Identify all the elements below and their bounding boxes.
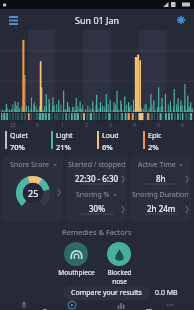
button[interactable]: Quiet [5, 131, 51, 152]
staticText: 2 [85, 122, 88, 129]
staticText: Snoring % [76, 190, 110, 200]
button[interactable]: Results [48, 301, 96, 310]
staticText: 3 [109, 122, 112, 129]
staticText: 70% [10, 142, 25, 152]
staticText: 30% [89, 203, 105, 214]
staticText: Started / stopped [68, 160, 126, 170]
button[interactable]: 2h 24m [130, 203, 191, 215]
button[interactable]: 22:30 - 6:30 [66, 173, 127, 185]
button[interactable]: Trends [96, 301, 145, 310]
button[interactable]: 8h [130, 173, 191, 185]
button[interactable]: Compare your results [63, 286, 150, 300]
staticText: 0 [36, 122, 39, 129]
button[interactable]: Epic [143, 131, 189, 152]
button[interactable]: More [145, 301, 194, 310]
staticText: 6% [102, 142, 113, 152]
staticText: 1 [61, 122, 64, 129]
staticText: 8h [156, 173, 166, 184]
button[interactable]: Mouthpiece [57, 242, 95, 277]
staticText: Compare your results [71, 288, 142, 298]
staticText: 5 [157, 122, 160, 129]
staticText: 6 [181, 122, 184, 129]
button[interactable]: Settings [174, 13, 188, 27]
staticText: Snore Score [10, 160, 50, 170]
staticText: Loud [102, 131, 119, 141]
button[interactable]: Record [0, 301, 48, 310]
staticText: 2h 24m [147, 203, 176, 214]
button[interactable]: Snore Score [3, 156, 63, 222]
staticText: Quiet [10, 131, 29, 141]
staticText: 0.0 MB [155, 288, 178, 298]
staticText: Snoring Duration [132, 190, 189, 200]
button[interactable]: 30% [66, 203, 127, 215]
staticText: Active Time [138, 160, 176, 170]
staticText: 25 [28, 187, 39, 199]
staticText: Epic [148, 131, 162, 141]
staticText: Blocked nose [107, 268, 132, 286]
staticText: Sun 01 Jan [75, 14, 120, 26]
button[interactable]: Menu [6, 13, 20, 27]
staticText: Mouthpiece [58, 268, 95, 277]
staticText: 21% [56, 142, 71, 152]
button[interactable]: Light [51, 131, 97, 152]
staticText: 23 [10, 122, 16, 129]
staticText: Remedies & Factors [62, 227, 132, 237]
staticText: 2% [148, 142, 159, 152]
staticText: 4 [133, 122, 136, 129]
staticText: 22:30 - 6:30 [75, 173, 119, 184]
button[interactable]: Blocked nose [100, 242, 138, 286]
button[interactable]: Loud [97, 131, 143, 152]
staticText: Light [56, 131, 73, 141]
